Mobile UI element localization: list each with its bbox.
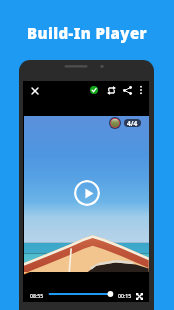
- staticText: 08:55: [30, 292, 44, 299]
- button[interactable]: Play: [74, 180, 100, 206]
- button[interactable]: Done: [85, 81, 103, 99]
- staticText: 00:15: [118, 292, 132, 299]
- button[interactable]: Elapsed time: [30, 290, 44, 301]
- button[interactable]: Close: [25, 81, 45, 101]
- button[interactable]: Profile: [109, 117, 121, 129]
- button[interactable]: Fullscreen: [133, 290, 145, 302]
- button[interactable]: Share: [118, 81, 136, 99]
- staticText: 4/4: [127, 119, 138, 127]
- button[interactable]: More options: [132, 81, 150, 99]
- button[interactable]: Repeat: [102, 81, 120, 99]
- button[interactable]: Seek bar: [46, 287, 116, 301]
- button[interactable]: Remaining time: [118, 290, 132, 301]
- staticText: Build-In Player: [27, 23, 147, 43]
